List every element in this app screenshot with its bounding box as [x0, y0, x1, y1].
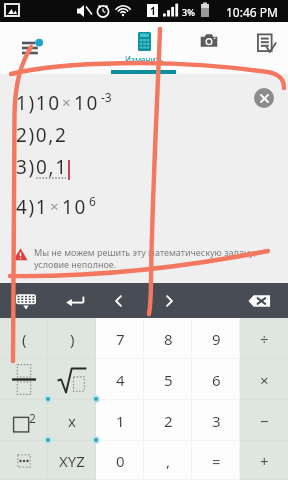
button[interactable]: x [48, 400, 96, 441]
button[interactable]: Backspace [242, 283, 276, 318]
staticText: 10 [62, 194, 87, 220]
button[interactable] [48, 359, 96, 400]
staticText: 3) [16, 154, 36, 180]
button[interactable]: Close [254, 88, 274, 108]
staticText: XYZ [59, 451, 85, 471]
button[interactable]: 5 [144, 359, 192, 400]
button[interactable]: Previous [104, 283, 134, 318]
button[interactable]: + [240, 441, 288, 480]
staticText: , [166, 451, 171, 471]
button[interactable]: 9 [192, 318, 240, 359]
staticText: 2 [164, 411, 173, 431]
staticText: Мы не можем решить эту математическую за… [34, 246, 256, 271]
staticText: × [50, 196, 59, 216]
staticText: − [260, 411, 269, 431]
staticText: 1 [116, 411, 125, 431]
staticText: 4 [116, 370, 125, 390]
button[interactable]: Solutions [246, 22, 286, 74]
staticText: 6 [212, 370, 221, 390]
staticText: 1 [150, 4, 156, 18]
staticText: 2 [29, 410, 36, 426]
staticText: 7 [116, 329, 125, 349]
button[interactable]: = [192, 441, 240, 480]
staticText: x [68, 411, 76, 431]
button[interactable]: 1 [96, 400, 144, 441]
staticText: = [212, 451, 221, 471]
button[interactable]: 8 [144, 318, 192, 359]
button[interactable]: Keyboard [10, 283, 42, 318]
staticText: 0,1 [36, 154, 68, 180]
button[interactable]: ÷ [240, 318, 288, 359]
button[interactable]: 4 [96, 359, 144, 400]
staticText: -3 [101, 89, 112, 105]
button[interactable]: History [10, 22, 54, 74]
staticText: 3 [212, 411, 221, 431]
button[interactable]: Изменить [112, 22, 176, 74]
button[interactable]: 0 [96, 441, 144, 480]
button[interactable]: 7 [96, 318, 144, 359]
button[interactable]: Camera [189, 22, 229, 74]
staticText: 10 [74, 90, 99, 116]
button[interactable]: , [144, 441, 192, 480]
button[interactable] [0, 359, 48, 400]
staticText: 9 [212, 329, 221, 349]
staticText: ( [22, 329, 27, 349]
button[interactable]: ( [0, 318, 48, 359]
staticText: 5 [164, 370, 173, 390]
staticText: + [260, 451, 269, 471]
staticText: ÷ [260, 329, 269, 349]
staticText: 4)1 [16, 194, 49, 220]
button[interactable] [0, 441, 48, 480]
staticText: 10:46 PM [226, 4, 278, 20]
button[interactable]: 2 [144, 400, 192, 441]
button[interactable]: × [240, 359, 288, 400]
button[interactable]: − [240, 400, 288, 441]
staticText: × [62, 92, 71, 112]
button[interactable]: ) [48, 318, 96, 359]
button[interactable]: Next [154, 283, 184, 318]
button[interactable]: XYZ [48, 441, 96, 480]
button[interactable]: Enter [58, 283, 92, 318]
staticText: 2)0,2 [16, 122, 68, 148]
staticText: 1)10 [16, 90, 61, 116]
staticText: 6 [89, 193, 96, 209]
staticText: 8 [164, 329, 173, 349]
button[interactable]: 6 [192, 359, 240, 400]
staticText: 0 [116, 451, 125, 471]
button[interactable]: 2 [0, 400, 48, 441]
staticText: Изменить [125, 54, 164, 65]
staticText: ) [70, 329, 75, 349]
button[interactable]: 3 [192, 400, 240, 441]
staticText: × [260, 370, 269, 390]
staticText: 3% [182, 6, 195, 18]
